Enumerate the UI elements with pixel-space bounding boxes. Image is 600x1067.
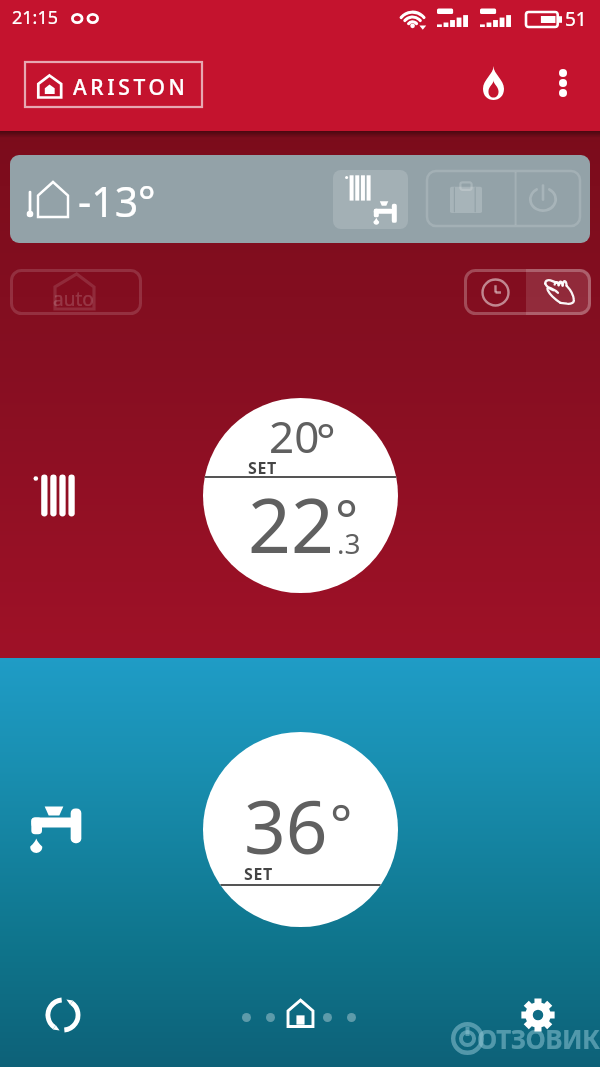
staticText: ARISTON <box>73 73 189 102</box>
staticText: ° <box>330 787 353 858</box>
button[interactable]: Flame burner status <box>469 59 517 107</box>
button[interactable]: Refresh <box>37 989 89 1041</box>
button[interactable]: Holiday mode <box>426 170 505 227</box>
button[interactable]: Manual mode <box>526 269 591 315</box>
staticText: 36 <box>244 776 328 875</box>
staticText: 21:15 <box>12 5 59 30</box>
button[interactable]: Settings <box>512 989 564 1041</box>
button[interactable]: Power off <box>505 170 581 227</box>
button[interactable]: Schedule programming <box>464 269 526 315</box>
button[interactable]: Home <box>276 989 324 1037</box>
button[interactable]: Auto mode <box>10 269 142 315</box>
button[interactable]: Heating <box>24 464 88 528</box>
staticText: -13° <box>78 173 156 229</box>
staticText: ОТЗОВИК <box>477 1021 600 1056</box>
staticText: SET <box>248 457 277 479</box>
staticText: auto <box>53 286 94 312</box>
button[interactable]: Hot water set 36 <box>203 732 398 927</box>
button[interactable]: More options <box>539 59 587 107</box>
staticText: SET <box>244 863 273 885</box>
button[interactable]: ARISTON <box>25 62 202 107</box>
button[interactable]: Room temperature 22.3, set 20 <box>203 398 398 593</box>
staticText: ° <box>316 408 336 471</box>
staticText: 20 <box>269 406 320 466</box>
button[interactable]: Hot water <box>30 806 82 854</box>
button[interactable]: Heating and hot water mode <box>333 170 408 229</box>
staticText: 51 <box>565 6 587 32</box>
staticText: ° <box>335 482 359 556</box>
staticText: 22 <box>248 473 334 575</box>
staticText: .3 <box>337 524 361 562</box>
